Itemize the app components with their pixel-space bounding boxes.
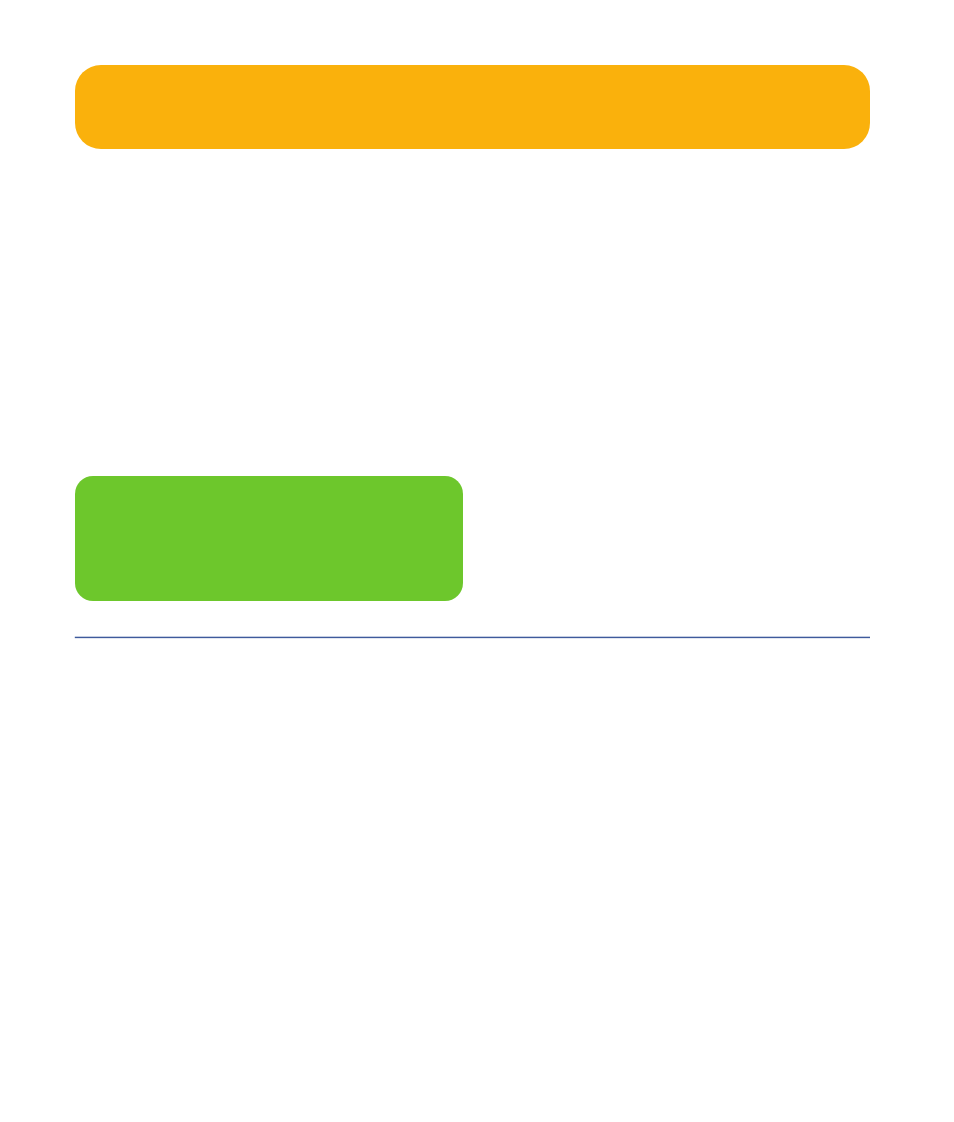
button[interactable]: Continue	[75, 476, 463, 601]
button[interactable]: Search	[75, 65, 870, 149]
